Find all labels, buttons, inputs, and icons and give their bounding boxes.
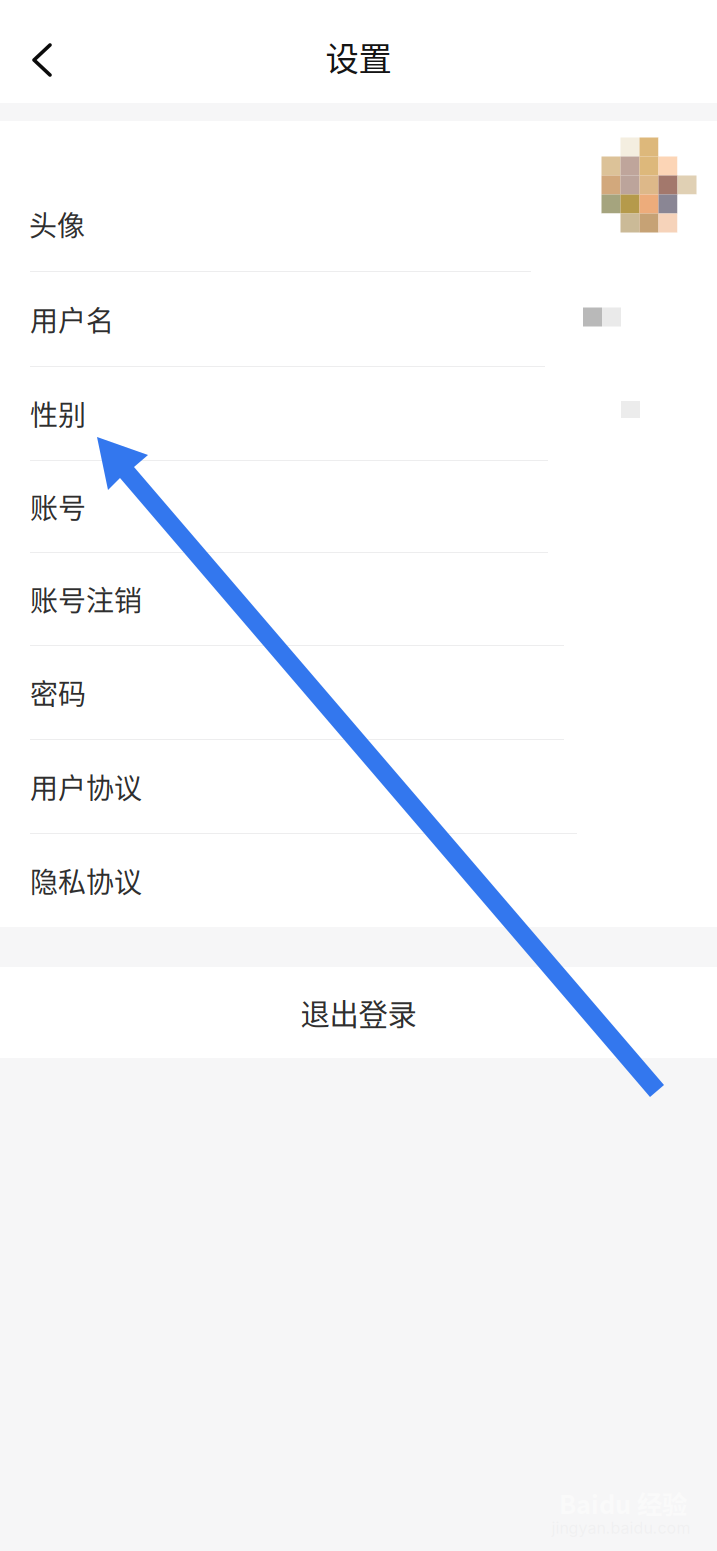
- staticText: 账号注销: [30, 579, 142, 619]
- button[interactable]: 退出登录: [0, 967, 717, 1058]
- staticText: 隐私协议: [30, 860, 142, 901]
- staticText: 用户协议: [30, 766, 142, 807]
- staticText: 密码: [30, 672, 86, 713]
- button[interactable]: 头像: [0, 121, 717, 271]
- staticText: 用户名: [30, 299, 114, 339]
- button[interactable]: 性别: [0, 367, 717, 460]
- staticText: 性别: [30, 393, 86, 434]
- button[interactable]: 用户名: [0, 272, 717, 366]
- staticText: 退出登录: [300, 991, 416, 1034]
- staticText: 头像: [29, 204, 85, 244]
- staticText: 设置: [325, 32, 391, 81]
- button[interactable]: 账号: [0, 461, 717, 552]
- button[interactable]: 用户协议: [0, 740, 717, 833]
- staticText: 账号: [30, 486, 86, 527]
- button[interactable]: 密码: [0, 646, 717, 739]
- button[interactable]: 账号注销: [0, 553, 717, 645]
- button[interactable]: 隐私协议: [0, 834, 717, 927]
- button[interactable]: 返回: [0, 0, 86, 103]
